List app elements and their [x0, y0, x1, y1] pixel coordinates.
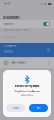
- button[interactable]: Pair: [29, 104, 48, 112]
- staticText: “Magic Keyboard” would like to pair: [14, 90, 40, 92]
- staticText: ⓘ: [47, 48, 50, 52]
- button[interactable]: Cancel: [6, 104, 25, 112]
- staticText: Cancel: [12, 107, 19, 109]
- staticText: Now discoverable as “iPhone”.: [4, 29, 31, 31]
- staticText: ◤: [45, 3, 47, 5]
- staticText: AirPods Pro: [4, 45, 16, 47]
- staticText: Connected: [4, 51, 13, 53]
- staticText: Pair: [36, 107, 40, 109]
- staticText: 9:41: [4, 2, 10, 5]
- staticText: ••••: [40, 3, 44, 5]
- staticText: Bluetooth Pairing Request: [14, 85, 39, 88]
- staticText: Magic Keyboard: [10, 61, 25, 64]
- staticText: Bluetooth: [4, 23, 13, 25]
- staticText: MY DEVICES: [4, 36, 15, 39]
- staticText: with your iPhone.: [21, 94, 33, 96]
- staticText: Bluetooth: [3, 15, 19, 20]
